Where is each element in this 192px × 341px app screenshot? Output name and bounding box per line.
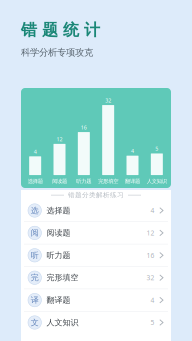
button[interactable]: 译 bbox=[21, 289, 171, 311]
staticText: 译 bbox=[31, 295, 39, 305]
staticText: 翻译题 bbox=[46, 295, 70, 305]
staticText: 人文知识 bbox=[46, 318, 78, 327]
button[interactable]: 完 bbox=[21, 267, 171, 289]
staticText: 选 bbox=[31, 206, 39, 215]
staticText: 5 bbox=[155, 145, 158, 152]
staticText: 选择题 bbox=[46, 206, 70, 215]
staticText: 翻译题 bbox=[125, 178, 140, 185]
staticText: 完形填空 bbox=[46, 273, 78, 283]
staticText: 16 bbox=[81, 124, 87, 131]
staticText: 听力题 bbox=[76, 178, 91, 185]
staticText: 4 bbox=[34, 148, 37, 155]
button[interactable]: 文 bbox=[21, 312, 171, 333]
button[interactable]: 选 bbox=[21, 200, 171, 221]
staticText: 32 bbox=[146, 273, 154, 282]
staticText: 完 bbox=[31, 273, 39, 283]
staticText: 阅读题 bbox=[46, 228, 70, 238]
staticText: 12 bbox=[56, 136, 62, 143]
staticText: 32 bbox=[105, 97, 111, 104]
staticText: 阅 bbox=[31, 228, 39, 238]
staticText: 文 bbox=[31, 318, 39, 327]
button[interactable]: 听 bbox=[21, 244, 171, 266]
staticText: 16 bbox=[146, 251, 154, 260]
staticText: 选择题 bbox=[28, 178, 43, 185]
staticText: 完形填空 bbox=[98, 178, 118, 185]
staticText: 12 bbox=[146, 228, 154, 237]
staticText: 听 bbox=[31, 250, 39, 260]
button[interactable]: 阅 bbox=[21, 222, 171, 244]
staticText: 阅读题 bbox=[52, 178, 67, 185]
staticText: 科学分析专项攻克 bbox=[21, 47, 93, 58]
staticText: 错题分类解析练习 bbox=[68, 191, 124, 199]
staticText: 错 题 统 计 bbox=[21, 20, 100, 40]
staticText: 5 bbox=[150, 318, 154, 327]
staticText: 4 bbox=[150, 206, 154, 215]
staticText: 听力题 bbox=[46, 250, 70, 260]
staticText: 4 bbox=[150, 296, 154, 305]
staticText: 4 bbox=[131, 147, 134, 154]
staticText: 人文知识 bbox=[147, 178, 167, 185]
